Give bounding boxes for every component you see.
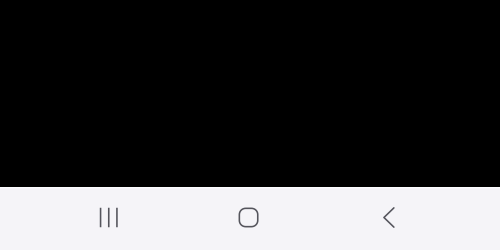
button[interactable]: Recent apps	[39, 187, 179, 250]
button[interactable]: Home	[179, 187, 319, 250]
button[interactable]: Back	[319, 187, 459, 250]
